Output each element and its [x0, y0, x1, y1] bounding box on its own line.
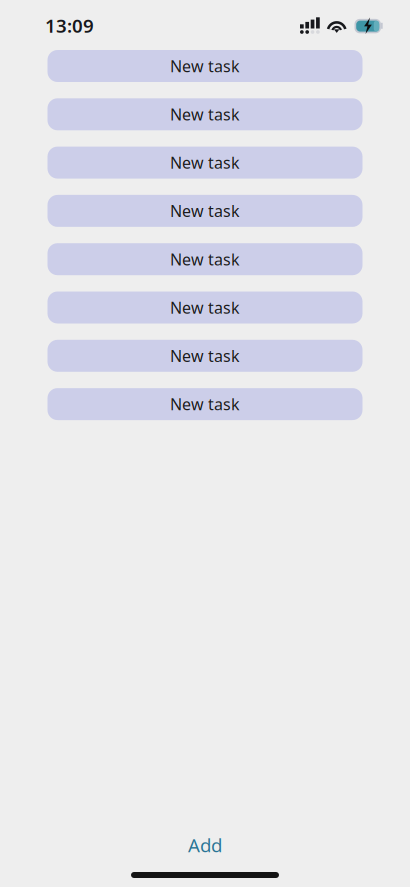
staticText: Add — [188, 833, 222, 857]
staticText: New task — [170, 152, 240, 173]
button[interactable]: New task — [47, 147, 362, 179]
staticText: New task — [170, 393, 240, 415]
staticText: New task — [170, 249, 240, 270]
button[interactable]: New task — [47, 50, 362, 82]
button[interactable]: Add — [169, 830, 241, 860]
staticText: New task — [170, 345, 240, 366]
staticText: New task — [170, 104, 240, 125]
staticText: New task — [170, 297, 240, 318]
button[interactable]: New task — [47, 388, 362, 420]
button[interactable]: New task — [47, 195, 362, 227]
staticText: New task — [170, 55, 240, 77]
button[interactable]: New task — [47, 243, 362, 275]
button[interactable]: New task — [47, 291, 362, 323]
staticText: 13:09 — [45, 13, 94, 38]
staticText: New task — [170, 200, 240, 221]
button[interactable]: New task — [47, 98, 362, 130]
button[interactable]: New task — [47, 340, 362, 372]
